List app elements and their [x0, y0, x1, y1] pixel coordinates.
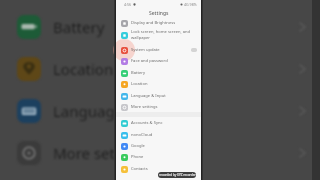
- button[interactable]: Lock screen, home screen, and: [116, 29, 201, 41]
- staticText: recorded by XYZ recorder: [159, 173, 196, 177]
- staticText: Battery: [131, 70, 146, 76]
- staticText: nonoCloud: [131, 132, 153, 138]
- button[interactable]: Language: [0, 90, 320, 132]
- button[interactable]: Face and password: [116, 55, 201, 67]
- staticText: 4:56: [124, 2, 132, 7]
- staticText: System update: [131, 47, 160, 53]
- staticText: Language & Input: [131, 93, 166, 99]
- staticText: 4G 98%: [184, 2, 197, 7]
- button[interactable]: Battery: [116, 67, 201, 79]
- staticText: Lock screen, home screen, and: [131, 29, 191, 35]
- button[interactable]: More settings: [116, 101, 201, 113]
- staticText: More settings: [53, 143, 150, 163]
- button[interactable]: Location: [0, 48, 320, 90]
- button[interactable]: System update: [116, 44, 201, 56]
- staticText: Google: [131, 143, 145, 149]
- staticText: Battery: [53, 17, 105, 37]
- button[interactable]: Accounts & Sync: [116, 117, 201, 129]
- button[interactable]: nonoCloud: [116, 129, 201, 141]
- button[interactable]: More settings: [0, 132, 320, 174]
- staticText: Phone: [131, 154, 144, 160]
- staticText: Accounts & Sync: [131, 120, 163, 126]
- button[interactable]: Contacts: [116, 163, 201, 175]
- staticText: wallpaper: [131, 35, 150, 41]
- button[interactable]: Location: [116, 78, 201, 90]
- button[interactable]: Battery: [0, 6, 320, 48]
- staticText: Settings: [149, 10, 169, 17]
- button[interactable]: Phone: [116, 151, 201, 163]
- staticText: More settings: [131, 104, 158, 110]
- button[interactable]: Display and Brightness: [116, 17, 201, 29]
- staticText: Face and password: [131, 58, 168, 64]
- staticText: Display and Brightness: [131, 20, 176, 26]
- button[interactable]: Language & Input: [116, 90, 201, 102]
- staticText: Contacts: [131, 166, 148, 172]
- staticText: Language: [53, 101, 124, 121]
- button[interactable]: Google: [116, 140, 201, 152]
- staticText: Location: [131, 81, 148, 87]
- staticText: Location: [53, 59, 114, 79]
